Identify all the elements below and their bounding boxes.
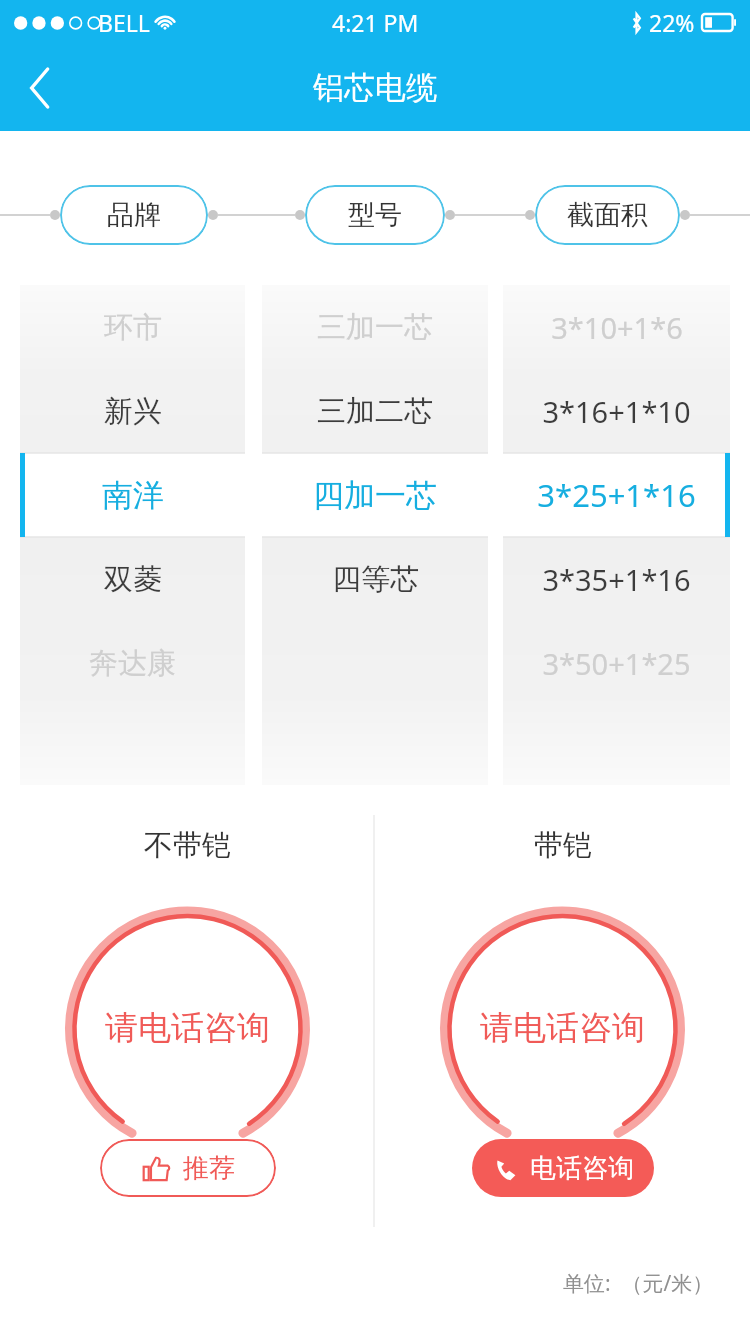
staticText: 四等芯 xyxy=(332,561,419,598)
button[interactable]: 型号 xyxy=(305,185,445,245)
staticText: 三加二芯 xyxy=(317,393,433,430)
button[interactable]: 环市 xyxy=(20,285,245,369)
button[interactable]: 3*16+1*10 xyxy=(503,369,730,453)
staticText: 南洋 xyxy=(102,476,164,515)
button[interactable]: 3*50+1*25 xyxy=(503,621,730,705)
button[interactable]: 返回 xyxy=(0,44,80,131)
staticText: 品牌 xyxy=(107,198,161,232)
button[interactable]: 四加一芯 xyxy=(262,453,488,537)
staticText: BELL xyxy=(98,7,150,38)
staticText: 请电话咨询 xyxy=(105,1007,270,1049)
staticText: 3*35+1*16 xyxy=(542,560,691,599)
button[interactable]: 电话咨询 xyxy=(472,1139,654,1197)
staticText: 单位: （元/米） xyxy=(563,1269,714,1298)
staticText: 3*16+1*10 xyxy=(542,392,691,431)
button[interactable]: 双菱 xyxy=(20,537,245,621)
staticText: 截面积 xyxy=(567,198,648,232)
button[interactable]: 三加二芯 xyxy=(262,369,488,453)
staticText: 奔达康 xyxy=(89,645,176,682)
button[interactable]: 3*25+1*16 xyxy=(503,453,730,537)
button[interactable]: 品牌 xyxy=(60,185,208,245)
button[interactable]: 四等芯 xyxy=(262,537,488,621)
staticText: 请电话咨询 xyxy=(480,1007,645,1049)
staticText: 不带铠 xyxy=(144,827,231,864)
staticText: 新兴 xyxy=(104,393,162,430)
staticText: 型号 xyxy=(348,198,402,232)
button[interactable]: 截面积 xyxy=(535,185,680,245)
staticText: 三加一芯 xyxy=(317,309,433,346)
staticText: 3*25+1*16 xyxy=(537,474,696,516)
button[interactable]: 3*10+1*6 xyxy=(503,285,730,369)
button[interactable]: 南洋 xyxy=(20,453,245,537)
staticText: 环市 xyxy=(104,309,162,346)
staticText: 4:21 PM xyxy=(332,7,419,38)
button[interactable]: 三加一芯 xyxy=(262,285,488,369)
button[interactable]: 推荐 xyxy=(100,1139,276,1197)
staticText: 四加一芯 xyxy=(313,476,437,515)
staticText: 推荐 xyxy=(183,1152,235,1185)
staticText: 3*10+1*6 xyxy=(551,308,683,347)
staticText: 双菱 xyxy=(104,561,162,598)
staticText: 22% xyxy=(649,7,695,38)
button[interactable]: 新兴 xyxy=(20,369,245,453)
staticText: 带铠 xyxy=(534,827,592,864)
staticText: 铝芯电缆 xyxy=(313,68,437,107)
staticText: 电话咨询 xyxy=(530,1152,634,1185)
staticText: 3*50+1*25 xyxy=(542,644,691,683)
button[interactable]: 3*35+1*16 xyxy=(503,537,730,621)
button[interactable]: 奔达康 xyxy=(20,621,245,705)
